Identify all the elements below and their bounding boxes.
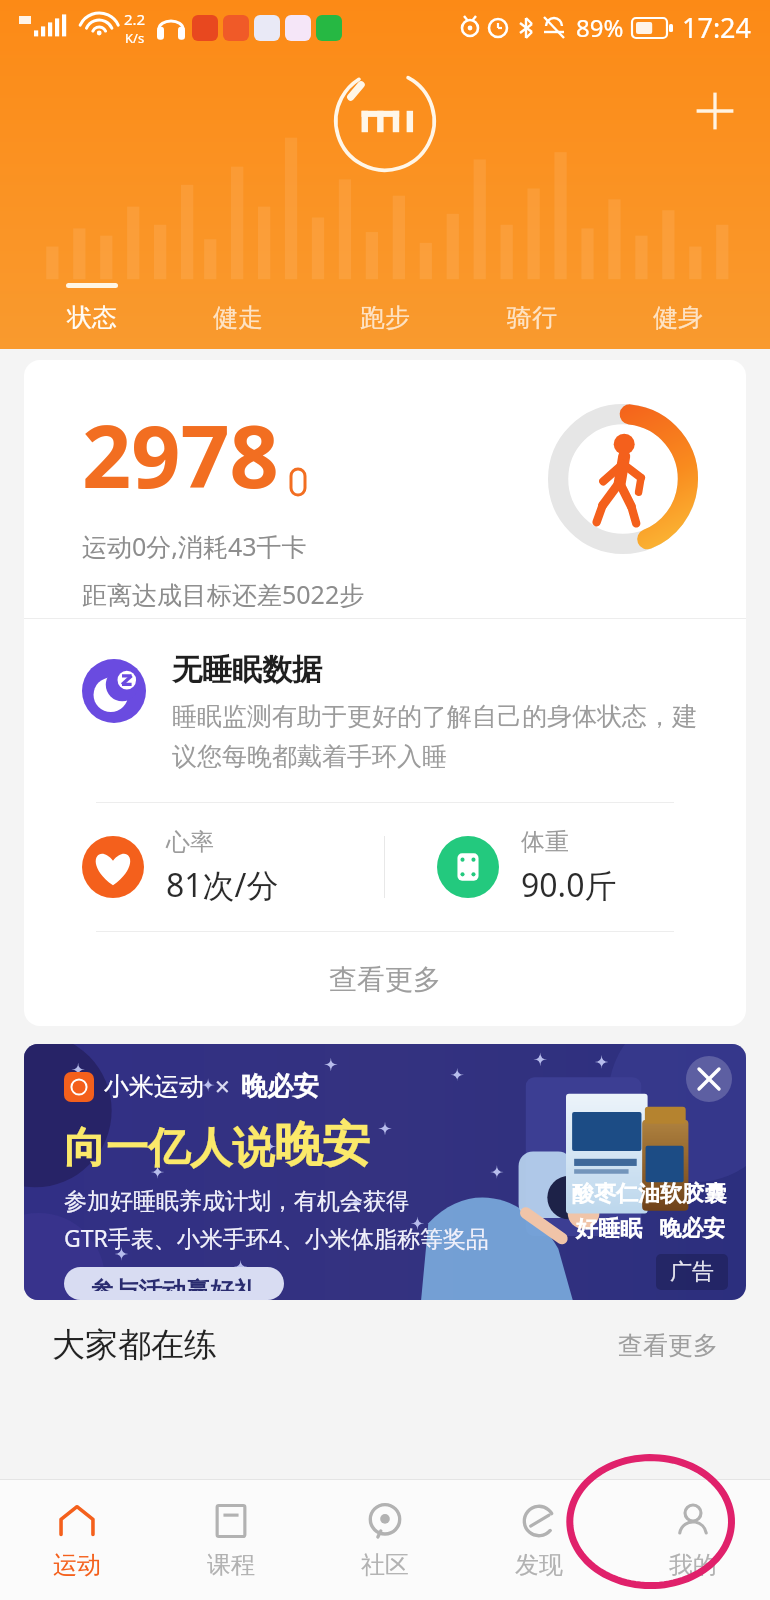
staticText: 晚必安 [241,1070,319,1103]
staticText: K/s [125,29,145,47]
staticText: 参与活动赢好礼 [90,1276,258,1291]
button[interactable]: 状态 [37,276,147,335]
button[interactable]: 社区 [308,1480,462,1600]
staticText: 晚安 [274,1115,370,1175]
staticText: 社区 [361,1550,409,1580]
staticText: 体重 [521,827,569,857]
staticText: 健身 [653,302,703,333]
button[interactable]: 骑行 [477,276,587,335]
staticText: 小米运动 [104,1071,204,1102]
staticText: 参加好睡眠养成计划，有机会获得 [64,1187,409,1216]
staticText: 无睡眠数据 [172,651,322,689]
staticText: 17:24 [682,9,752,46]
button[interactable]: 无睡眠数据 [24,619,746,802]
staticText: 查看更多 [618,1330,718,1361]
staticText: 睡眠监测有助于更好的了解自己的身体状态，建议您每晚都戴着手环入睡 [172,701,706,772]
button[interactable]: 参与活动赢好礼 [64,1267,284,1300]
staticText: 运动0分,消耗43千卡 [82,529,307,563]
button[interactable]: 课程 [154,1480,308,1600]
staticText: 90.0斤 [521,863,617,907]
staticText: 状态 [67,302,117,333]
staticText: 2978 [82,396,279,513]
staticText: 我的 [669,1550,717,1580]
staticText: 运动 [53,1550,101,1580]
staticText: 2.2 [124,9,146,29]
button[interactable]: 健走 [183,276,293,335]
staticText: 距离达成目标还差5022步 [82,577,365,611]
button[interactable]: 运动 [0,1480,154,1600]
button[interactable]: 查看更多 [24,932,746,1026]
button[interactable]: 心率 [24,803,384,931]
staticText: 课程 [207,1550,255,1580]
staticText: 酸枣仁油软胶囊 [572,1180,726,1208]
button[interactable]: 发现 [462,1480,616,1600]
staticText: 好睡眠 晚必安 [576,1212,726,1242]
button[interactable]: Add [692,88,738,134]
staticText: 向一亿人说 [64,1122,274,1175]
button[interactable]: 我的 [616,1480,770,1600]
staticText: GTR手表、小米手环4、小米体脂称等奖品 [64,1222,489,1253]
button[interactable]: 大家都在练 [52,1324,718,1366]
staticText: 89% [576,11,624,44]
staticText: 跑步 [360,302,410,333]
staticText: 骑行 [507,302,557,333]
staticText: 大家都在练 [52,1324,217,1366]
button[interactable]: Close ad [686,1056,732,1102]
staticText: 81次/分 [166,863,279,907]
staticText: 查看更多 [329,962,441,997]
staticText: 健走 [213,302,263,333]
button[interactable]: 跑步 [330,276,440,335]
button[interactable]: 健身 [623,276,733,335]
staticText: 发现 [515,1550,563,1580]
staticText: 心率 [166,827,214,857]
staticText: 广告 [670,1258,714,1286]
button[interactable]: 酸枣仁油软胶囊 [24,1044,746,1300]
staticText: ✕ [214,1075,231,1098]
button[interactable]: 体重 [385,803,746,931]
